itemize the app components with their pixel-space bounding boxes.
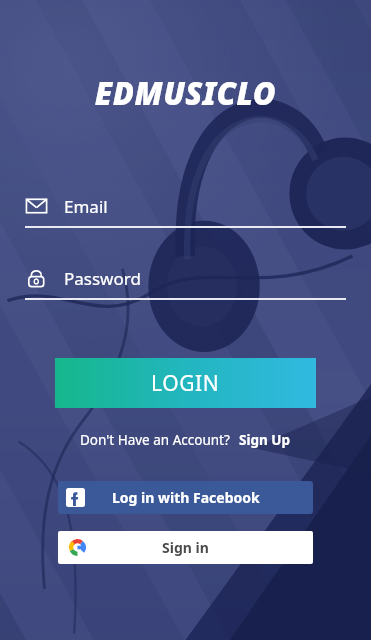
staticText: Sign in <box>162 538 209 557</box>
staticText: Password <box>64 267 141 290</box>
button[interactable]: Log in with Facebook <box>58 481 313 514</box>
staticText: Email <box>64 195 108 218</box>
other: Email <box>25 194 49 218</box>
staticText: EDMUSICLO <box>0 72 371 114</box>
button[interactable]: Sign Up <box>239 431 291 449</box>
staticText: Log in with Facebook <box>112 488 260 507</box>
other: Password <box>25 266 49 290</box>
button[interactable]: Email <box>25 194 346 228</box>
staticText: LOGIN <box>151 369 220 398</box>
staticText: Don't Have an Account? <box>80 431 230 449</box>
button[interactable]: Password <box>25 266 346 300</box>
staticText: Sign Up <box>239 431 291 449</box>
button[interactable]: LOGIN <box>55 358 316 408</box>
button[interactable]: Sign in <box>58 531 313 564</box>
